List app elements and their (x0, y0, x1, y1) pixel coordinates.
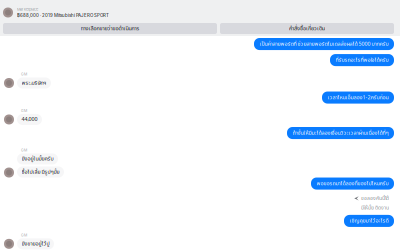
staticText: ทางเลือกขายว่าขอดำเนินการ (80, 24, 139, 33)
staticText: 44,000 (21, 115, 37, 123)
button[interactable]: คำสั่งซื้อเกี่ยวเติม (220, 23, 394, 34)
staticText: พระ,บริษัทฯ (21, 79, 46, 87)
staticText: ถ้างั้นให้มีมะได้ลองเงื่อนวิวะเวลาผ่านเน… (292, 129, 388, 137)
staticText: ยังอยู่ในมั้ยครับ (21, 155, 53, 163)
staticText: GM (21, 72, 27, 76)
staticText: ขอลองคันนี้ได้ (361, 195, 389, 202)
staticText: ซื้อไปเลี้ย มีรูปๆมั้ย (21, 168, 59, 176)
staticText: เชิญคุยมาไว้อะไรดี (349, 217, 388, 225)
staticText: GM (21, 109, 27, 113)
staticText: GM (21, 233, 27, 237)
staticText: เป็นค่าสายพอร์ตที่ ช่วยสายพอร์ตโมเดลส่งผ… (259, 40, 388, 48)
staticText: ที่รับรถอะไรที่พอใจได้ครับ (335, 56, 388, 64)
staticText: เวลาไหนเอ็มลอง1-2ครับก่อน (327, 93, 388, 102)
staticText: GM (21, 148, 27, 152)
staticText: คำสั่งซื้อเกี่ยวเติม (289, 24, 325, 33)
staticText: ยังขายอยู่ไว้ปู (21, 240, 49, 248)
staticText: พอขอรถมาได้ลองที่ของไปไหนครับ (316, 179, 388, 188)
staticText: มีให้มั้ย ติดงาน (361, 204, 389, 212)
staticText: Marketplace (17, 7, 38, 12)
staticText: ฿688,000 · 2019 Mitsubishi PAJERO SPORT (17, 13, 109, 18)
button[interactable]: ทางเลือกขายว่าขอดำเนินการ (3, 23, 217, 34)
